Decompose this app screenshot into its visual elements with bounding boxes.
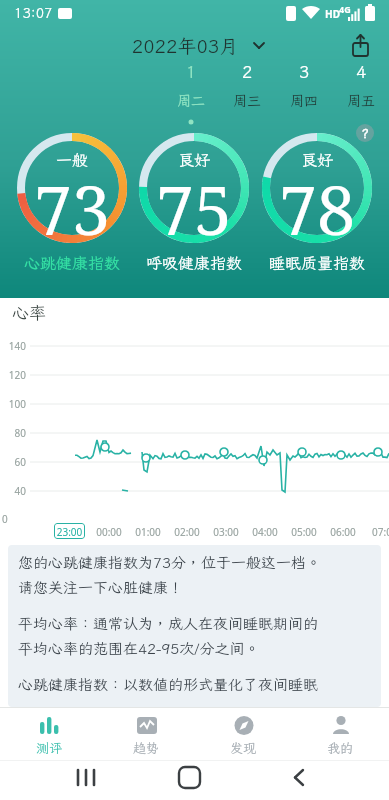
button[interactable]: 2022年03月 (120, 33, 280, 61)
staticText: 100 (2, 397, 26, 411)
staticText: 1 (165, 60, 217, 82)
staticText: 周五 (335, 92, 387, 110)
staticText: 00:00 (92, 525, 126, 539)
staticText: 01:00 (131, 525, 165, 539)
staticText: 40 (2, 484, 26, 498)
button[interactable] (17, 133, 127, 243)
staticText: 3 (278, 60, 330, 82)
staticText: HD (325, 7, 340, 21)
staticText: 13:07 (14, 4, 53, 22)
staticText: 良好 (266, 149, 368, 170)
button[interactable]: 3 (278, 60, 330, 118)
staticText: 78 (266, 162, 368, 255)
staticText: 周四 (278, 92, 330, 110)
staticText: 呼吸健康指数 (134, 252, 254, 273)
staticText: 4 (335, 60, 387, 82)
button[interactable] (139, 133, 249, 243)
staticText: 07:0 (365, 525, 389, 539)
staticText: 我的 (327, 740, 354, 757)
staticText: 80 (2, 426, 26, 440)
staticText: 140 (2, 339, 26, 353)
staticText: 75 (143, 162, 245, 255)
staticText: 心跳健康指数：以数值的形式量化了夜间睡眠 (18, 675, 319, 695)
staticText: 04:00 (248, 525, 282, 539)
staticText: 您的心跳健康指数为73分，位于一般这一档。 (18, 553, 322, 573)
button[interactable]: 4 (335, 60, 387, 118)
staticText: 06:00 (326, 525, 360, 539)
staticText: 4G (339, 3, 351, 15)
staticText: 60 (2, 455, 26, 469)
staticText: 请您关注一下心脏健康！ (18, 578, 184, 598)
staticText: 2022年03月 (120, 33, 250, 58)
staticText: 睡眠质量指数 (257, 252, 377, 273)
staticText: 03:00 (209, 525, 243, 539)
button[interactable]: 我的 (292, 708, 389, 760)
button[interactable]: 2 (221, 60, 273, 118)
staticText: 平均心率：通常认为，成人在夜间睡眠期间的 (18, 614, 319, 634)
button[interactable]: 测评 (0, 708, 98, 760)
button[interactable]: ? (356, 124, 374, 142)
staticText: 趋势 (133, 740, 160, 757)
staticText: ? (356, 126, 374, 142)
staticText: 心率 (12, 301, 46, 323)
staticText: 周二 (165, 92, 217, 110)
staticText: 23:00 (54, 525, 85, 539)
staticText: 测评 (36, 740, 63, 757)
button[interactable]: 发现 (195, 708, 292, 760)
staticText: 02:00 (170, 525, 204, 539)
staticText: 良好 (143, 149, 245, 170)
staticText: 发现 (230, 740, 257, 757)
staticText: 73 (21, 162, 123, 255)
staticText: 05:00 (287, 525, 321, 539)
staticText: 0 (2, 512, 8, 526)
staticText: 心跳健康指数 (12, 252, 132, 273)
staticText: 120 (2, 368, 26, 382)
staticText: 2 (221, 60, 273, 82)
staticText: 平均心率的范围在42-95次/分之间。 (18, 639, 260, 659)
button[interactable]: 您的心跳健康指数为73分，位于一般这一档。 (8, 545, 381, 707)
button[interactable]: 趋势 (98, 708, 195, 760)
staticText: 一般 (21, 149, 123, 170)
button[interactable]: 23:00 (54, 523, 85, 539)
button[interactable] (262, 133, 372, 243)
staticText: 周三 (221, 92, 273, 110)
button[interactable]: 1 (165, 60, 217, 118)
button[interactable] (348, 34, 376, 60)
